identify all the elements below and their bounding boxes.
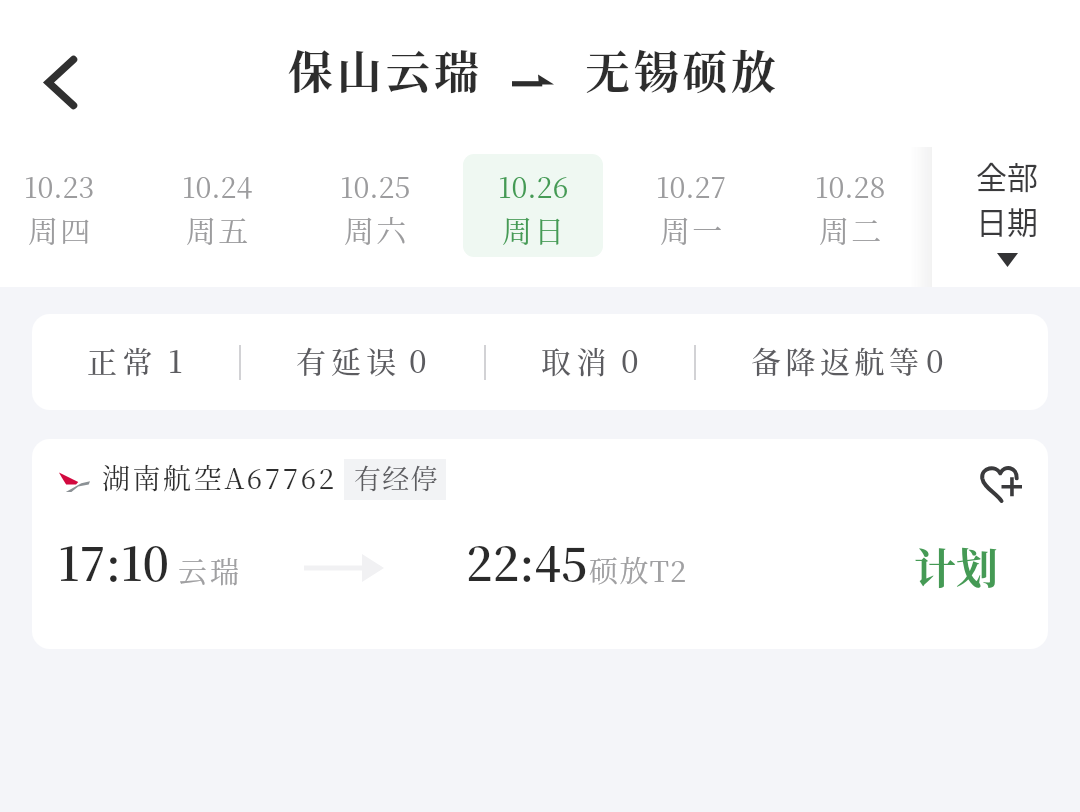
staticText: 周日 bbox=[502, 207, 567, 250]
staticText: 10.23 bbox=[24, 165, 95, 206]
staticText: 1 bbox=[168, 337, 183, 382]
staticText: 备降返航等 bbox=[751, 338, 924, 381]
button[interactable]: 10.25 bbox=[305, 154, 445, 257]
staticText: 周一 bbox=[660, 207, 725, 250]
button[interactable]: Add to favourites bbox=[962, 444, 1040, 522]
staticText: 云瑞 bbox=[178, 550, 243, 592]
staticText: 湖南航空A67762 bbox=[102, 457, 337, 497]
staticText: 无锡硕放 bbox=[585, 37, 780, 102]
staticText: 全部 bbox=[976, 153, 1038, 198]
staticText: 0 bbox=[926, 337, 944, 382]
staticText: 周六 bbox=[344, 207, 409, 250]
staticText: 周五 bbox=[186, 207, 251, 250]
staticText: 10.24 bbox=[182, 165, 253, 206]
staticText: 周二 bbox=[819, 207, 884, 250]
staticText: 10.25 bbox=[340, 165, 411, 206]
button[interactable]: 有延误 bbox=[273, 314, 447, 410]
staticText: 正常 bbox=[87, 338, 158, 381]
staticText: 17:10 bbox=[58, 528, 170, 594]
button[interactable]: 10.28 bbox=[780, 154, 920, 257]
button[interactable]: 取消 bbox=[518, 314, 659, 410]
button[interactable]: 全部 bbox=[932, 147, 1080, 287]
staticText: 有经停 bbox=[354, 458, 439, 497]
staticText: 取消 bbox=[541, 338, 612, 381]
staticText: 保山云瑞 bbox=[288, 37, 483, 102]
staticText: 周四 bbox=[28, 207, 93, 250]
staticText: 日期 bbox=[976, 198, 1038, 243]
button[interactable]: 10.27 bbox=[621, 154, 761, 257]
staticText: 硕放T2 bbox=[589, 549, 688, 591]
staticText: 22:45 bbox=[466, 528, 588, 594]
button[interactable]: 湖南航空A67762 bbox=[32, 439, 1048, 649]
staticText: 10.27 bbox=[656, 165, 727, 206]
staticText: 10.26 bbox=[498, 165, 569, 206]
staticText: 10.28 bbox=[815, 165, 886, 206]
button[interactable]: Back bbox=[22, 43, 100, 121]
staticText: 有延误 bbox=[296, 338, 402, 381]
button[interactable]: 10.24 bbox=[147, 154, 287, 257]
staticText: 计划 bbox=[914, 536, 999, 596]
button[interactable]: 10.26 bbox=[463, 154, 603, 257]
staticText: 0 bbox=[621, 337, 639, 382]
staticText: 0 bbox=[409, 337, 427, 382]
button[interactable]: 备降返航等 bbox=[728, 314, 964, 410]
button[interactable]: 正常 bbox=[64, 314, 206, 410]
button[interactable]: 10.23 bbox=[0, 154, 129, 257]
